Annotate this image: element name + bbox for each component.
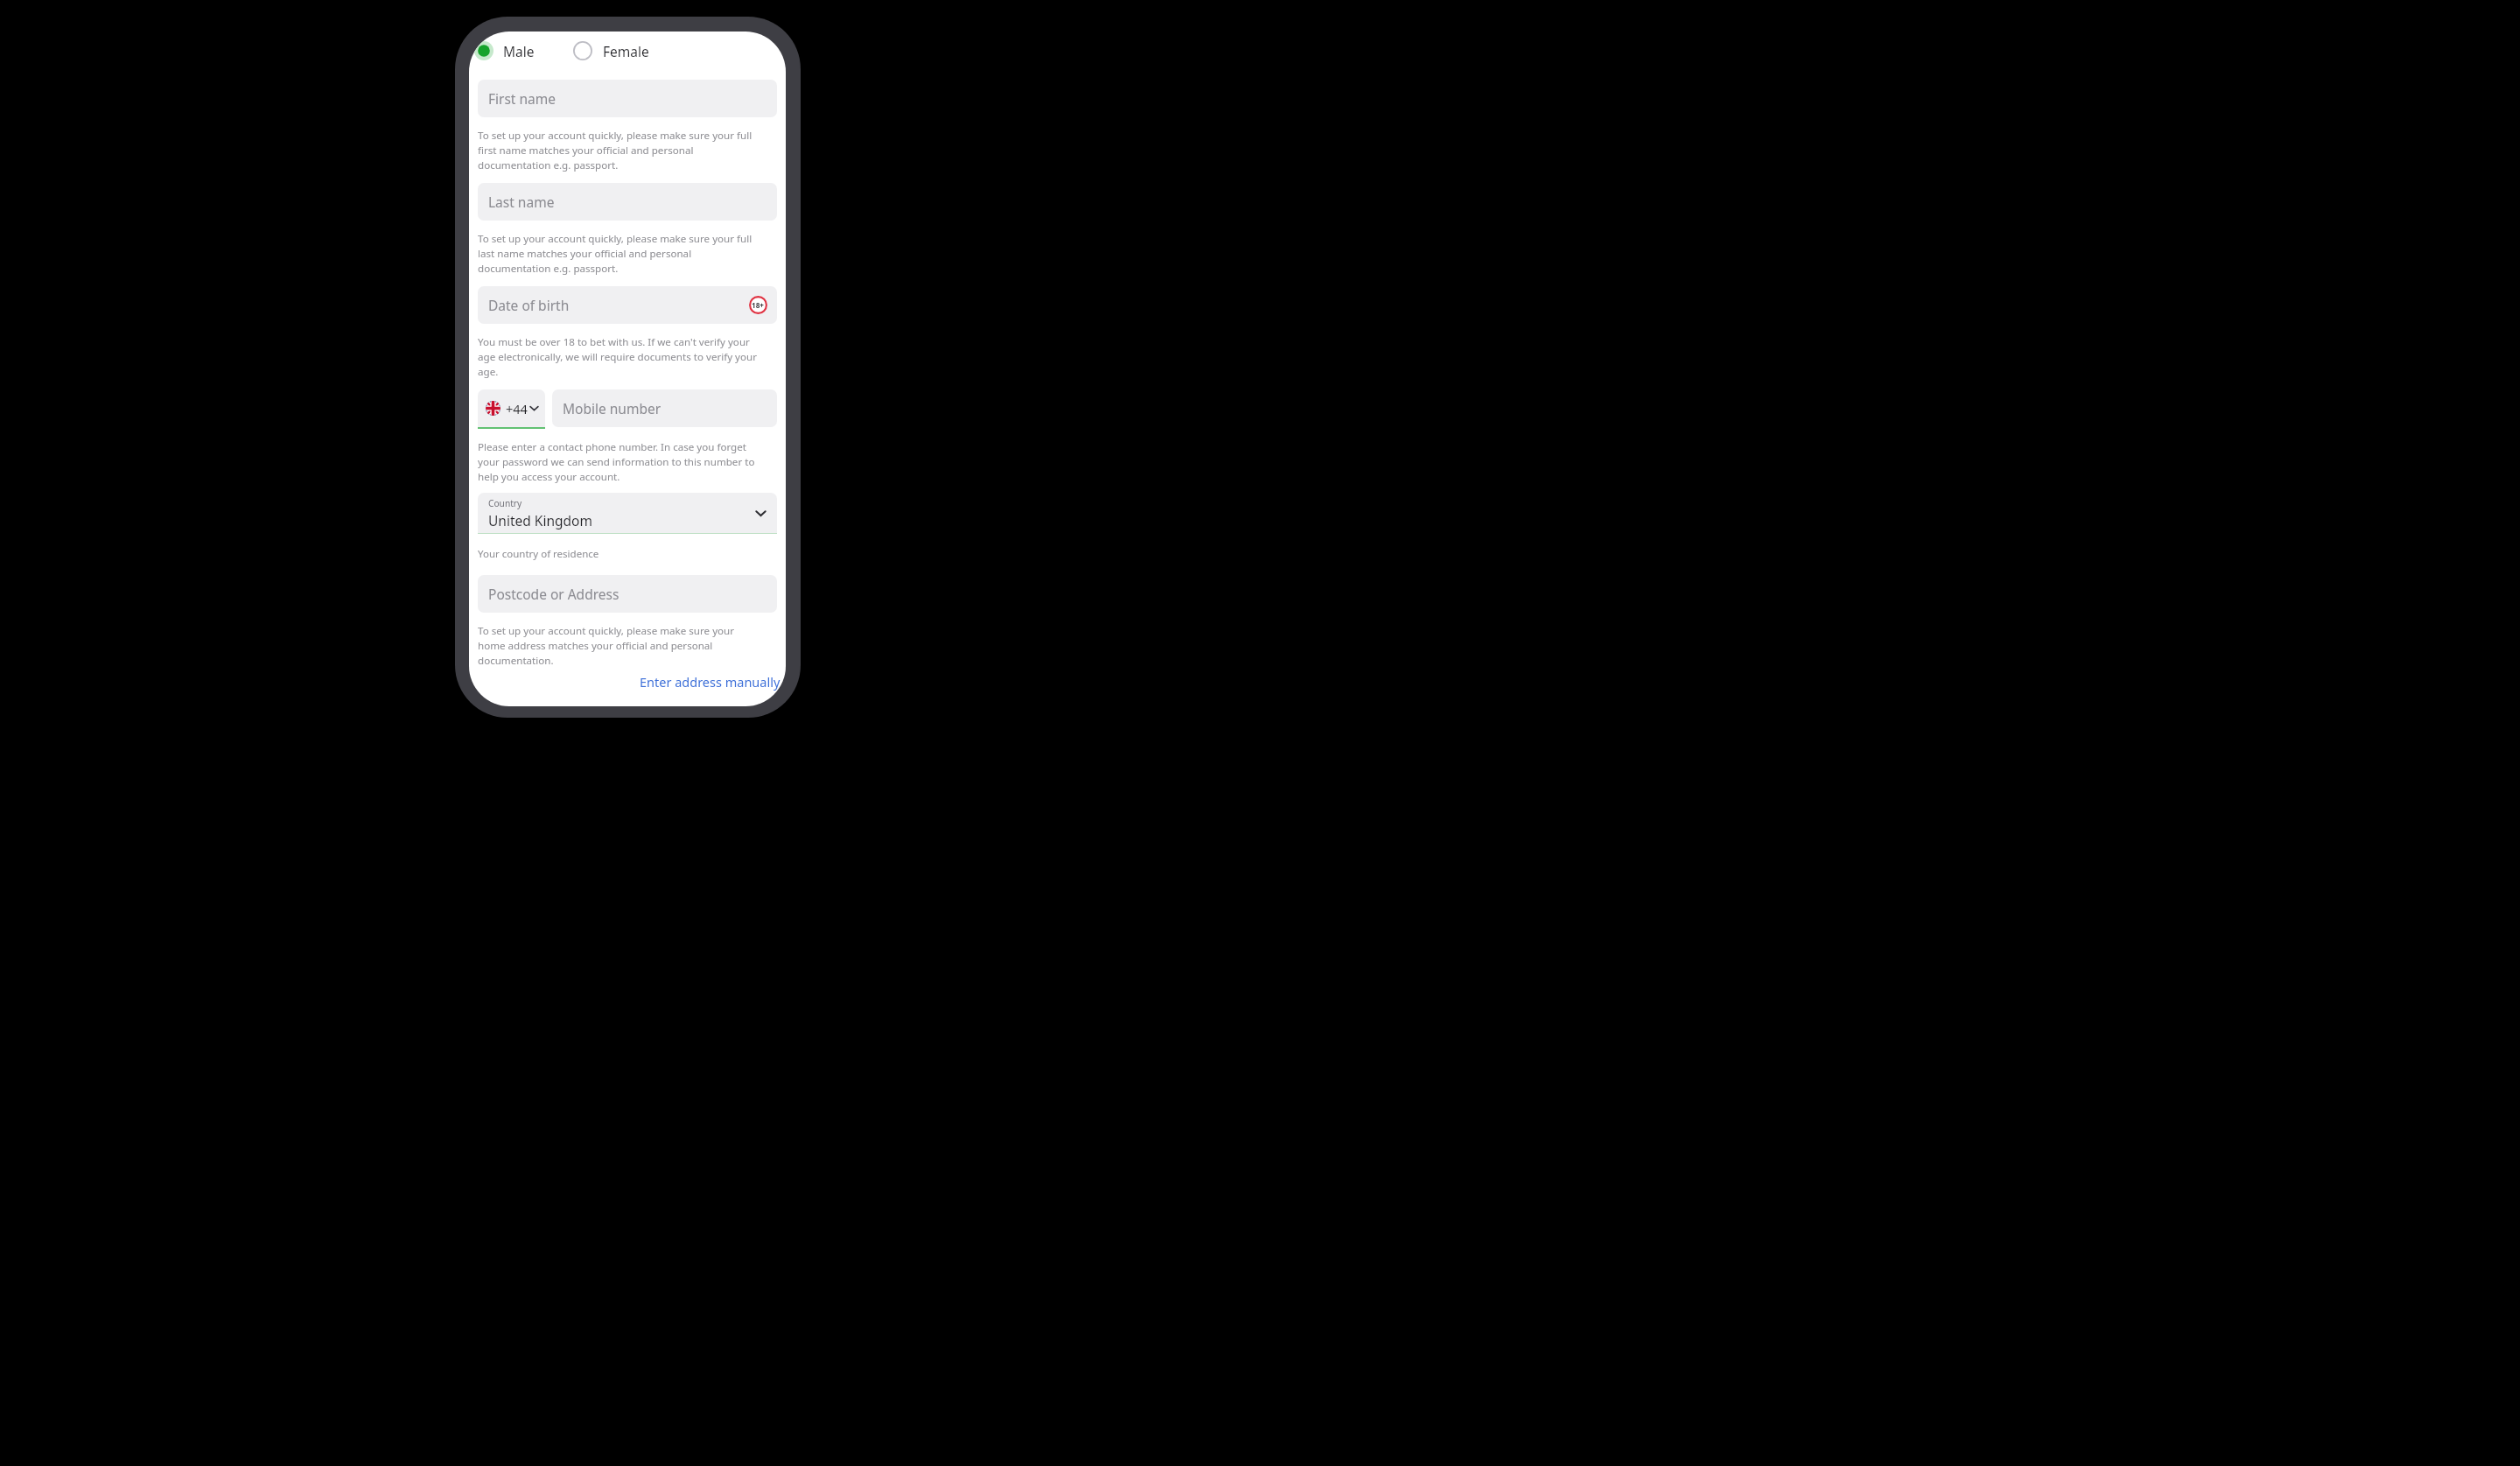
staticText: You must be over 18 to bet with us. If w… bbox=[478, 335, 758, 378]
staticText: Postcode or Address bbox=[488, 585, 619, 603]
staticText: To set up your account quickly, please m… bbox=[478, 129, 758, 172]
staticText: 18+ bbox=[752, 300, 765, 310]
staticText: Enter address manually bbox=[640, 673, 780, 691]
staticText: To set up your account quickly, please m… bbox=[478, 232, 758, 275]
button[interactable]: Date of birth bbox=[478, 286, 777, 324]
button[interactable]: Postcode or Address bbox=[478, 575, 777, 613]
staticText: To set up your account quickly, please m… bbox=[478, 624, 758, 667]
staticText: Male bbox=[503, 42, 535, 60]
button[interactable]: First name bbox=[478, 80, 777, 117]
button[interactable]: Mobile number bbox=[552, 389, 777, 427]
staticText: First name bbox=[488, 89, 556, 108]
button[interactable]: Male bbox=[469, 36, 542, 66]
staticText: Mobile number bbox=[563, 399, 661, 417]
staticText: United Kingdom bbox=[488, 511, 592, 530]
staticText: Please enter a contact phone number. In … bbox=[478, 440, 758, 483]
staticText: Country bbox=[488, 497, 522, 509]
staticText: Female bbox=[603, 42, 649, 60]
button[interactable]: Enter address manually bbox=[638, 670, 782, 693]
staticText: Your country of residence bbox=[478, 547, 599, 561]
staticText: +44 bbox=[506, 400, 528, 417]
button[interactable]: +44 bbox=[478, 389, 545, 427]
staticText: Last name bbox=[488, 193, 555, 211]
button[interactable]: Last name bbox=[478, 183, 777, 221]
button[interactable]: Female bbox=[570, 36, 653, 66]
staticText: Date of birth bbox=[488, 296, 570, 314]
button[interactable]: Country bbox=[478, 493, 777, 533]
